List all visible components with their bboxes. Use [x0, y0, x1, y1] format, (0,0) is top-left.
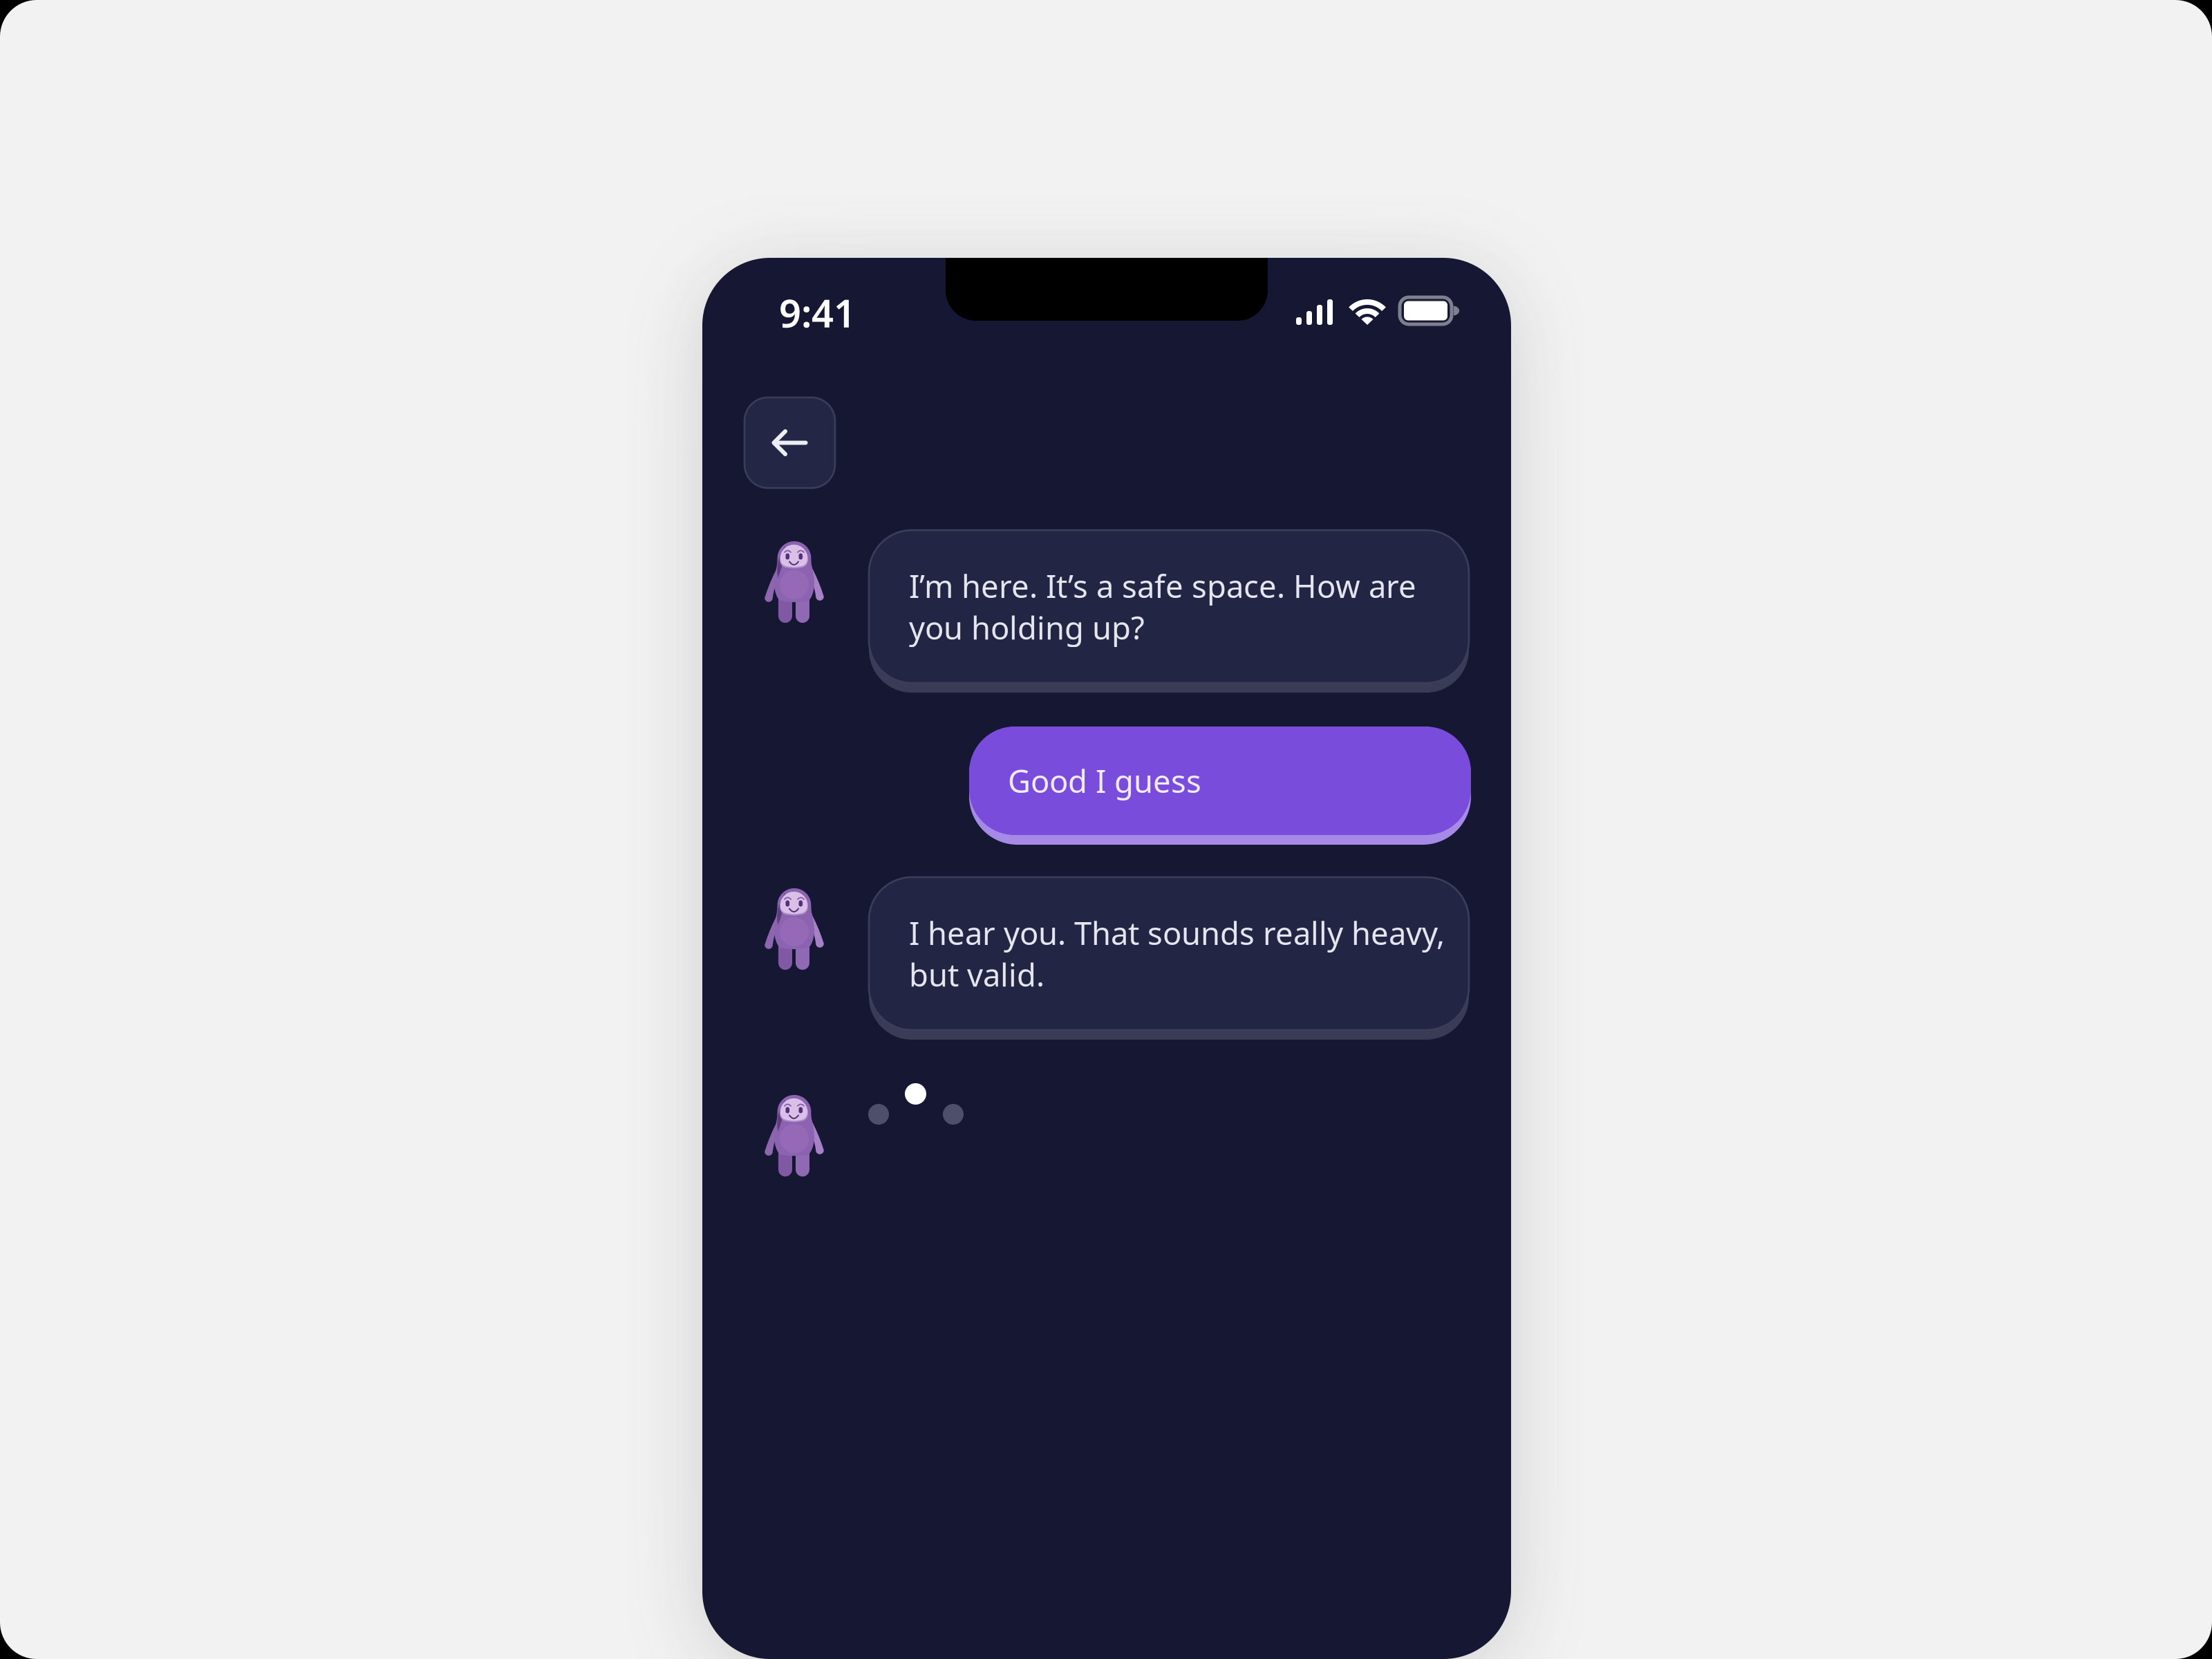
staticText: I hear you. That sounds really heavy, bu…: [909, 912, 1445, 995]
button[interactable]: Back: [744, 397, 835, 488]
staticText: Good I guess: [1008, 760, 1201, 802]
staticText: I’m here. It’s a safe space. How are you…: [909, 565, 1416, 648]
staticText: 9:41: [779, 287, 856, 338]
